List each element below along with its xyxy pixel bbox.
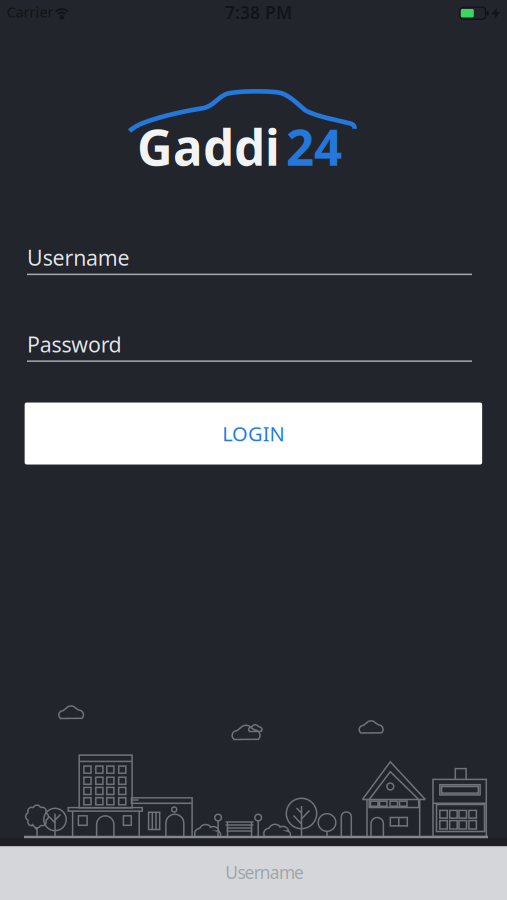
- staticText: Password: [27, 330, 122, 358]
- staticText: Carrier: [6, 2, 53, 22]
- button[interactable]: Username: [27, 243, 472, 275]
- staticText: Username: [225, 861, 304, 884]
- staticText: 24: [286, 114, 342, 179]
- staticText: Gaddi: [137, 114, 280, 179]
- staticText: Username: [27, 243, 130, 272]
- button[interactable]: Username: [225, 861, 304, 884]
- staticText: LOGIN: [222, 420, 284, 447]
- button[interactable]: Password: [27, 330, 472, 362]
- button[interactable]: LOGIN: [25, 402, 482, 464]
- staticText: 7:38 PM: [225, 1, 292, 24]
